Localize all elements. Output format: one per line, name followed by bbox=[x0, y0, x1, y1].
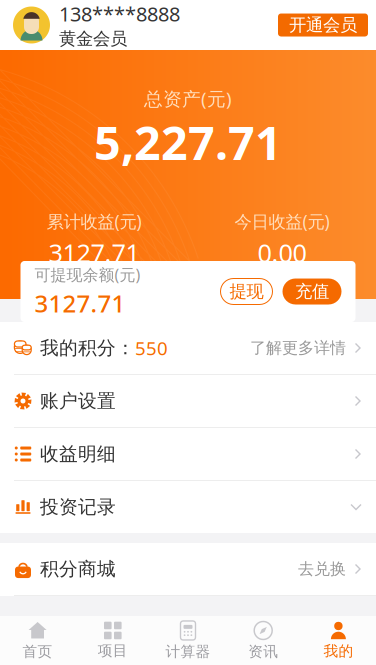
button[interactable]: 开通会员 bbox=[278, 13, 368, 36]
staticText: 累计收益(元) bbox=[46, 210, 141, 233]
staticText: 了解更多详情 bbox=[250, 338, 346, 358]
staticText: 充值 bbox=[295, 281, 329, 302]
staticText: 首页 bbox=[23, 642, 53, 660]
staticText: 0.00 bbox=[257, 236, 306, 269]
button[interactable]: 收益明细 bbox=[0, 428, 376, 480]
staticText: 3127.71 bbox=[48, 236, 139, 269]
staticText: 账户设置 bbox=[40, 389, 116, 412]
button[interactable]: 充值 bbox=[282, 278, 341, 304]
staticText: 提现 bbox=[229, 281, 263, 302]
staticText: 可提现余额(元) bbox=[34, 264, 140, 285]
staticText: 3127.71 bbox=[34, 287, 125, 319]
button[interactable]: 首页 bbox=[0, 616, 75, 665]
button[interactable]: 提现 bbox=[220, 278, 272, 304]
staticText: 138****8888 bbox=[59, 1, 180, 27]
staticText: 项目 bbox=[98, 641, 128, 659]
staticText: 计算器 bbox=[165, 642, 210, 660]
staticText: 去兑换 bbox=[298, 559, 346, 579]
staticText: 收益明细 bbox=[40, 442, 116, 465]
staticText: 资讯 bbox=[248, 642, 278, 660]
button[interactable]: 我的积分： bbox=[0, 322, 376, 374]
staticText: 黄金会员 bbox=[59, 28, 127, 49]
button[interactable]: 积分商城 bbox=[0, 543, 376, 595]
staticText: 总资产(元) bbox=[144, 86, 232, 111]
button[interactable]: 投资记录 bbox=[0, 481, 376, 533]
button[interactable]: 计算器 bbox=[150, 616, 226, 665]
staticText: 我的积分： bbox=[40, 336, 135, 359]
staticText: 我的 bbox=[323, 642, 353, 660]
staticText: 今日收益(元) bbox=[234, 210, 329, 233]
button[interactable]: 资讯 bbox=[226, 616, 301, 665]
staticText: 投资记录 bbox=[40, 495, 116, 518]
button[interactable]: 我的 bbox=[301, 616, 376, 665]
staticText: 5,227.71 bbox=[94, 111, 282, 173]
button[interactable]: 项目 bbox=[75, 616, 150, 665]
button[interactable]: 账户设置 bbox=[0, 375, 376, 427]
staticText: 550 bbox=[135, 336, 168, 360]
staticText: 开通会员 bbox=[289, 14, 357, 36]
staticText: 积分商城 bbox=[40, 557, 116, 580]
